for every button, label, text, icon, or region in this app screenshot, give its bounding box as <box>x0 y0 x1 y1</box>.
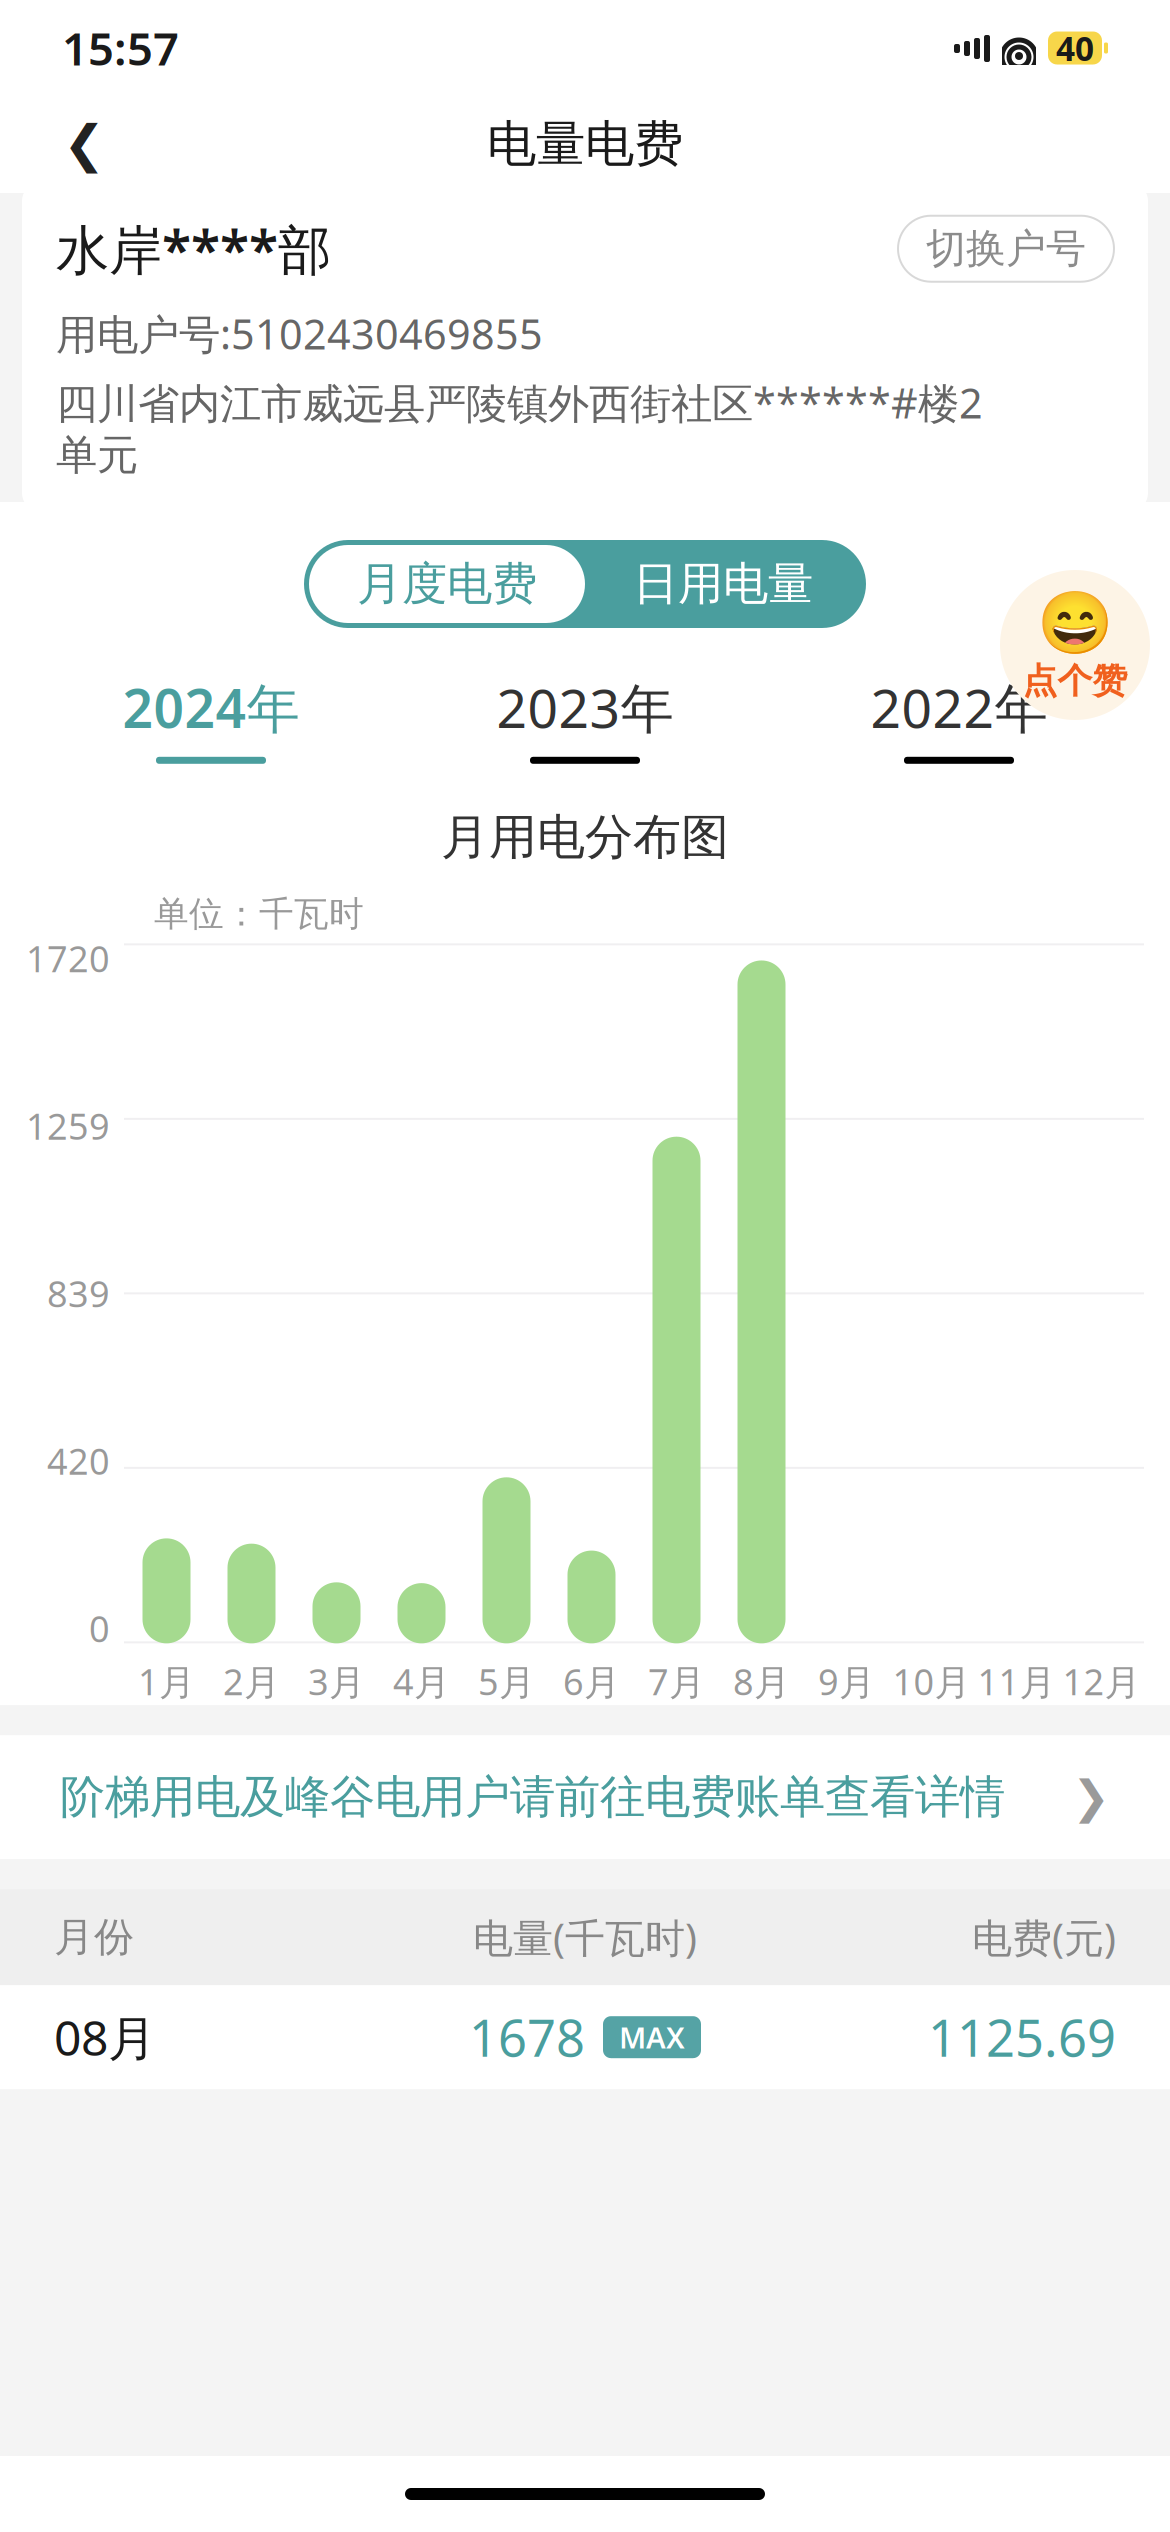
staticText: 1125.69 <box>928 2003 1116 2071</box>
button[interactable]: 2024年 <box>24 654 398 782</box>
staticText: 用电户号:5102430469855 <box>56 306 543 361</box>
button[interactable]: 月度电费 <box>309 545 585 623</box>
button[interactable]: 切换户号 <box>898 216 1114 282</box>
staticText: 阶梯用电及峰谷电用户请前往电费账单查看详情 <box>60 1769 1005 1825</box>
staticText: 2022年 <box>870 672 1047 743</box>
staticText: 电量电费 <box>487 114 683 174</box>
staticText: 420 <box>47 1437 110 1485</box>
staticText: ❮ <box>63 115 105 173</box>
staticText: 839 <box>47 1269 110 1317</box>
button[interactable]: Back <box>40 100 128 188</box>
staticText: 1月 <box>138 1657 195 1705</box>
staticText: 四川省内江市威远县严陵镇外西街社区******#楼2 单元 <box>56 375 983 481</box>
staticText: 10月 <box>892 1657 970 1705</box>
staticText: 😄 <box>1037 588 1113 658</box>
staticText: 月度电费 <box>357 556 537 612</box>
staticText: 08月 <box>54 2005 156 2069</box>
staticText: 电费(元) <box>972 1911 1116 1964</box>
staticText: 点个赞 <box>1022 660 1127 702</box>
staticText: ❯ <box>1072 1771 1110 1823</box>
staticText: 7月 <box>648 1657 705 1705</box>
staticText: 2024年 <box>122 672 299 743</box>
button[interactable]: 点个赞 <box>1000 570 1150 720</box>
staticText: 1720 <box>26 934 110 982</box>
staticText: 40 <box>1056 26 1094 70</box>
staticText: 5月 <box>478 1657 535 1705</box>
button[interactable]: 阶梯用电及峰谷电用户请前往电费账单查看详情 <box>0 1735 1170 1859</box>
staticText: 月用电分布图 <box>441 808 729 867</box>
staticText: 切换户号 <box>926 224 1086 273</box>
staticText: 1678 <box>469 2003 585 2071</box>
staticText: 单位：千瓦时 <box>154 893 364 935</box>
button[interactable]: 日用电量 <box>585 545 861 623</box>
staticText: 0 <box>89 1604 110 1652</box>
staticText: 4月 <box>393 1657 450 1705</box>
staticText: 11月 <box>977 1657 1055 1705</box>
staticText: 8月 <box>733 1657 790 1705</box>
staticText: 9月 <box>818 1657 875 1705</box>
staticText: MAX <box>619 2018 685 2057</box>
staticText: 2023年 <box>496 672 673 743</box>
staticText: 6月 <box>563 1657 620 1705</box>
staticText: 12月 <box>1062 1657 1140 1705</box>
button[interactable]: 08月 <box>0 1985 1170 2089</box>
staticText: 15:57 <box>62 18 179 78</box>
staticText: 电量(千瓦时) <box>473 1911 697 1964</box>
staticText: 2月 <box>223 1657 280 1705</box>
button[interactable]: 2022年 <box>772 654 1146 782</box>
staticText: 3月 <box>308 1657 365 1705</box>
staticText: 月份 <box>54 1913 134 1962</box>
staticText: 1259 <box>26 1102 110 1150</box>
staticText: 水岸****部 <box>56 213 331 284</box>
staticText: 日用电量 <box>633 556 813 612</box>
button[interactable]: 2023年 <box>398 654 772 782</box>
